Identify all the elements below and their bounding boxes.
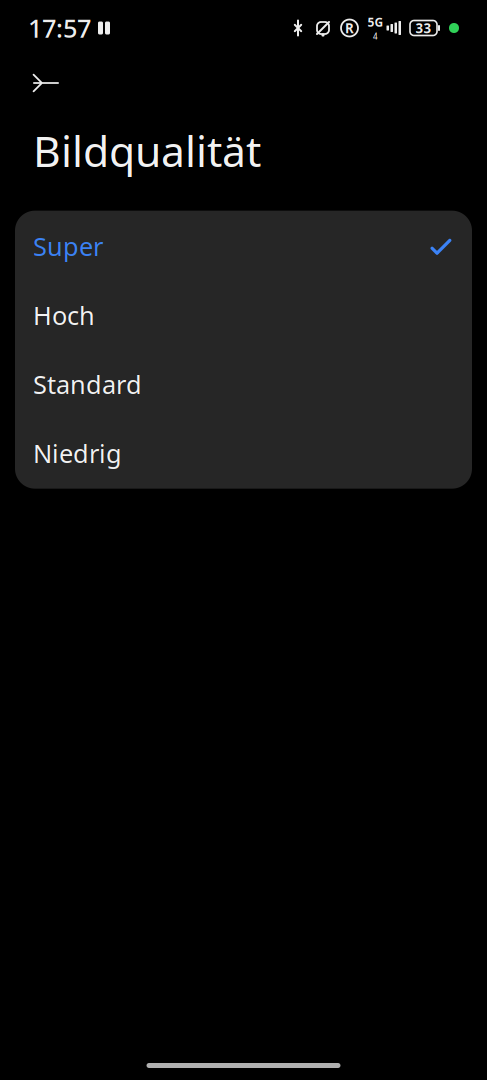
- button[interactable]: Hoch: [15, 281, 472, 350]
- button[interactable]: Back: [20, 59, 72, 107]
- staticText: 5G: [367, 14, 383, 30]
- staticText: Niedrig: [33, 436, 122, 470]
- staticText: Hoch: [33, 298, 95, 332]
- button[interactable]: Niedrig: [15, 419, 472, 488]
- staticText: Bildqualität: [33, 122, 261, 179]
- staticText: 17:57: [28, 11, 91, 45]
- staticText: 4: [373, 31, 378, 42]
- staticText: 33: [415, 19, 431, 37]
- staticText: Standard: [33, 367, 142, 401]
- button[interactable]: Super: [15, 212, 472, 281]
- staticText: Super: [33, 229, 103, 263]
- staticText: R: [345, 19, 354, 37]
- button[interactable]: Standard: [15, 350, 472, 419]
